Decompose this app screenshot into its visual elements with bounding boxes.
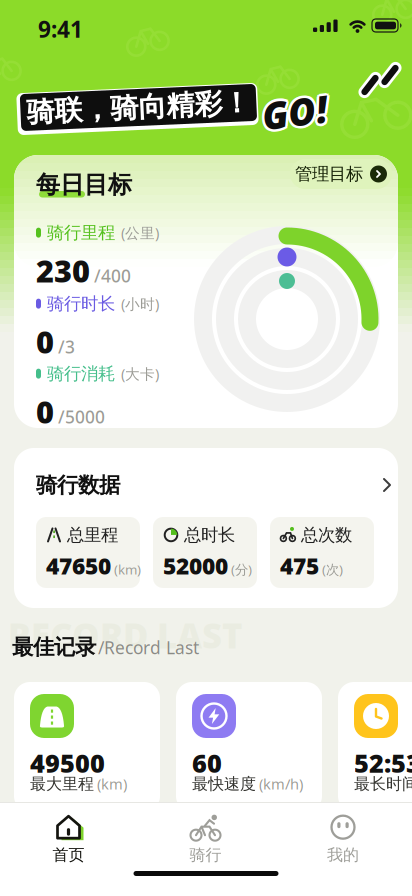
staticText: 52:53:4 [354, 746, 412, 780]
staticText: GO! [259, 87, 324, 137]
staticText: /Record Last [98, 636, 199, 659]
staticText: 47650 [46, 551, 111, 581]
staticText: GO! [260, 85, 325, 135]
button[interactable]: 60 [176, 682, 322, 812]
staticText: (分) [231, 560, 252, 578]
staticText: GO! [265, 87, 330, 137]
staticText: (大卡) [121, 364, 159, 383]
staticText: 骑行里程 [47, 222, 115, 243]
staticText: GO! [262, 90, 327, 139]
staticText: 骑行时长 [47, 293, 115, 314]
staticText: GO! [262, 84, 327, 134]
staticText: 0 [36, 321, 54, 362]
button[interactable]: 49500 [14, 682, 160, 812]
button[interactable]: 管理目标 [290, 159, 392, 189]
staticText: (km) [114, 560, 141, 578]
staticText: (公里) [121, 223, 159, 242]
button[interactable]: 52:53:4 [338, 682, 412, 812]
button[interactable]: 骑行 [137, 810, 274, 868]
staticText: 230 [36, 250, 90, 291]
staticText: 0 [36, 391, 54, 432]
staticText: 骑行消耗 [47, 363, 115, 384]
staticText: (km) [97, 774, 127, 794]
staticText: 最快速度 [192, 774, 256, 794]
staticText: (km/h) [259, 774, 303, 794]
staticText: GO! [262, 87, 327, 137]
staticText: 最大里程 [30, 774, 94, 794]
button[interactable]: 我的 [274, 810, 412, 868]
button[interactable]: 骑行数据 [14, 448, 398, 608]
staticText: 骑行数据 [36, 472, 120, 498]
staticText: 52000 [163, 551, 228, 581]
staticText: 最佳记录 [12, 634, 96, 660]
staticText: /5000 [58, 405, 105, 428]
staticText: /3 [58, 335, 75, 358]
button[interactable]: 首页 [0, 810, 137, 868]
staticText: 60 [192, 746, 222, 780]
staticText: 骑联，骑向精彩！ [26, 90, 250, 125]
staticText: 首页 [52, 845, 84, 865]
staticText: RECORD LAST [8, 612, 242, 658]
staticText: 骑行 [189, 845, 221, 865]
staticText: 总次数 [301, 524, 352, 546]
staticText: 49500 [30, 746, 105, 780]
staticText: 每日目标 [36, 170, 132, 199]
staticText: 总里程 [67, 524, 118, 546]
staticText: 475 [280, 551, 319, 581]
staticText: GO! [260, 89, 325, 138]
staticText: 我的 [327, 845, 359, 865]
staticText: /400 [94, 264, 131, 287]
staticText: (小时) [121, 294, 159, 313]
staticText: 最长时间 [354, 774, 412, 794]
staticText: (次) [322, 560, 343, 578]
staticText: 9:41 [38, 14, 83, 44]
staticText: GO! [264, 89, 329, 138]
staticText: 管理目标 [295, 163, 363, 185]
staticText: 总时长 [184, 524, 235, 546]
staticText: GO! [264, 85, 329, 135]
